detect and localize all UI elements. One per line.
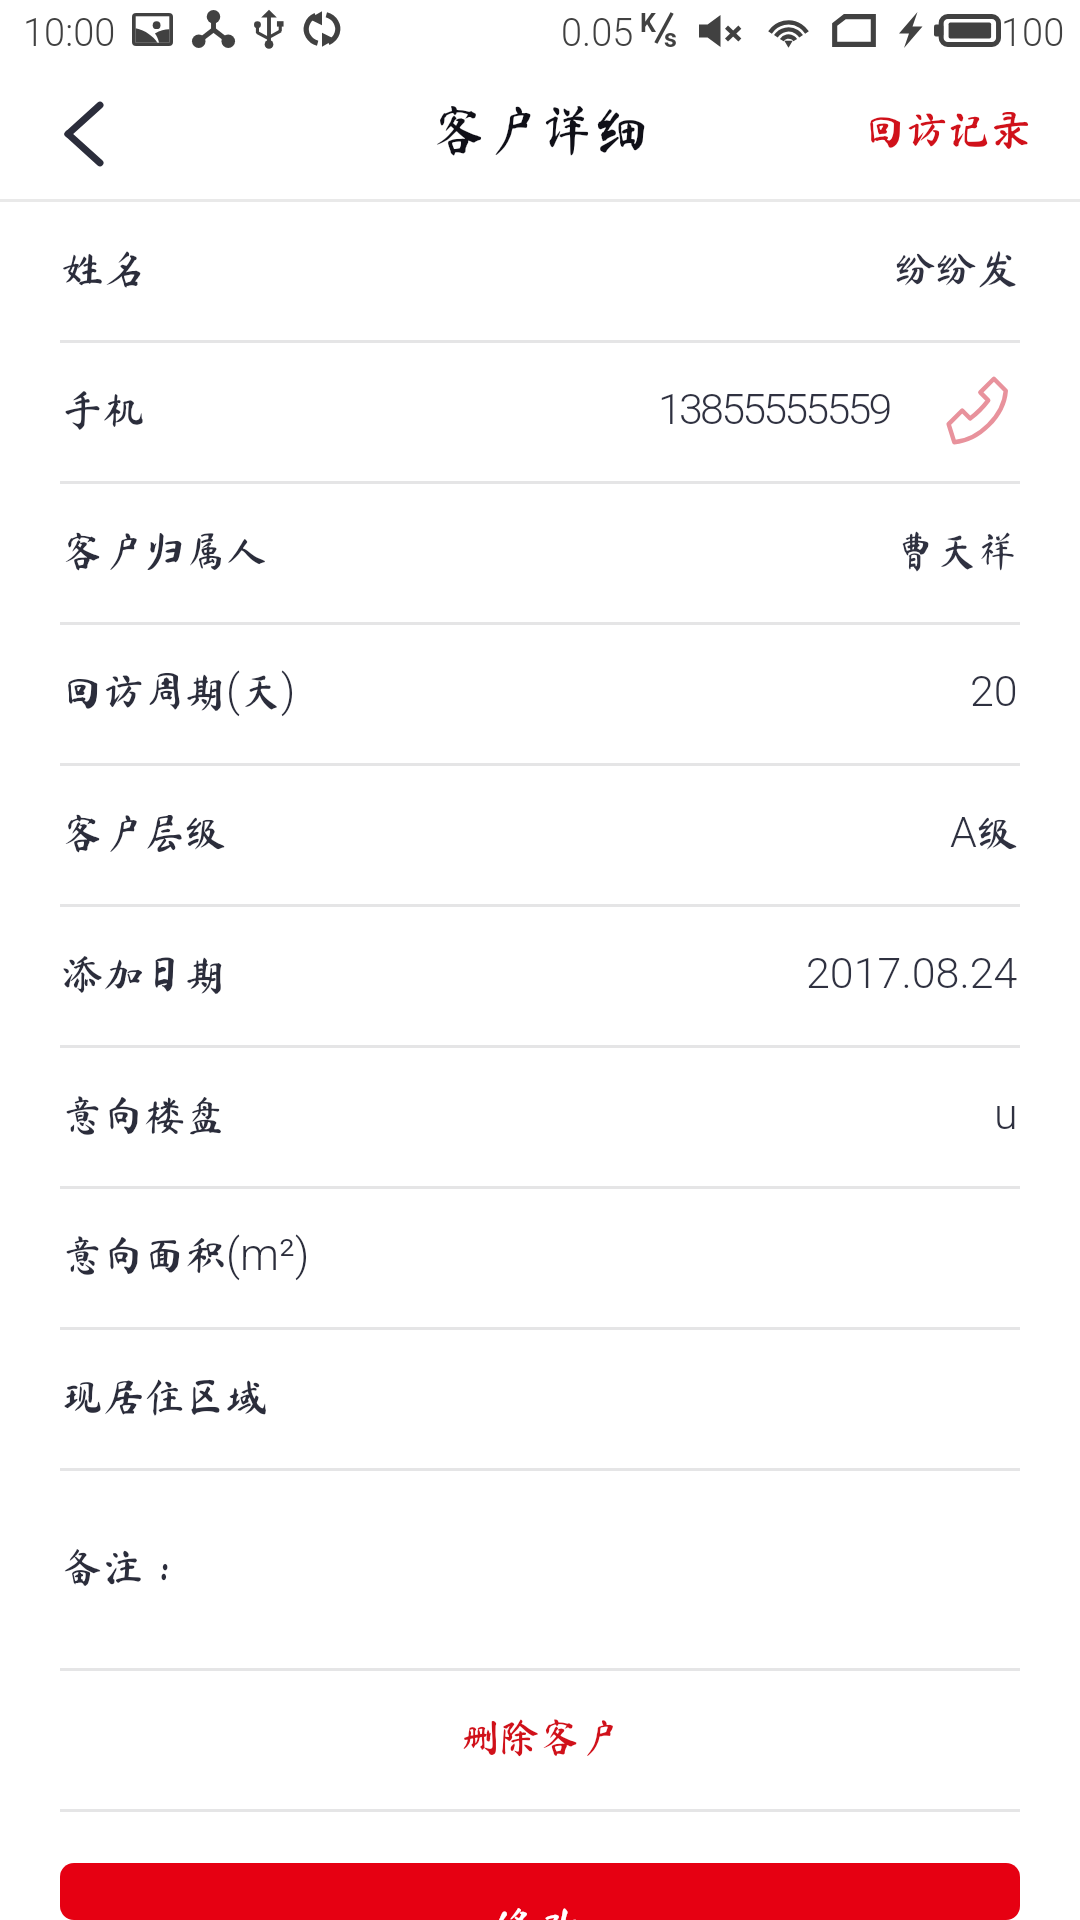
staticText: 客户详细 bbox=[432, 102, 648, 156]
button[interactable]: 意向面积(m²) bbox=[0, 1189, 1080, 1327]
staticText: K bbox=[640, 9, 656, 38]
button[interactable]: 回访记录 bbox=[834, 69, 1080, 199]
button[interactable]: 客户归属人 bbox=[0, 484, 1080, 622]
staticText: 曹天祥 bbox=[895, 530, 1018, 571]
button[interactable]: 回访周期(天) bbox=[0, 625, 1080, 763]
staticText: 100 bbox=[1001, 11, 1065, 56]
button[interactable]: 修改 bbox=[60, 1863, 1020, 1920]
button[interactable]: 删除客户 bbox=[0, 1671, 1080, 1809]
staticText: 客户归属人 bbox=[62, 530, 267, 571]
staticText: 客户层级 bbox=[62, 812, 226, 853]
button[interactable]: 客户层级 bbox=[0, 766, 1080, 904]
staticText: 纷纷发 bbox=[895, 248, 1018, 289]
staticText: A bbox=[950, 807, 977, 857]
staticText: 现居住区域 bbox=[62, 1376, 267, 1417]
button[interactable]: 姓名 bbox=[0, 202, 1080, 340]
staticText: 意向楼盘 bbox=[62, 1094, 226, 1135]
staticText: 0.05 bbox=[561, 11, 634, 56]
button[interactable]: 意向楼盘 bbox=[0, 1048, 1080, 1186]
staticText: 姓名 bbox=[62, 248, 144, 289]
button[interactable]: 备注： bbox=[0, 1471, 1080, 1668]
staticText: 备注： bbox=[62, 1546, 185, 1587]
staticText: 13855555559 bbox=[658, 384, 890, 434]
staticText: 回访周期(天) bbox=[62, 665, 296, 717]
staticText: s bbox=[664, 24, 677, 53]
staticText: 添加日期 bbox=[62, 953, 226, 994]
staticText: 10:00 bbox=[23, 11, 116, 56]
staticText: 级 bbox=[977, 812, 1018, 853]
button[interactable]: 现居住区域 bbox=[0, 1330, 1080, 1468]
button[interactable]: 手机 bbox=[0, 343, 1080, 481]
staticText: u bbox=[994, 1089, 1018, 1139]
button[interactable]: 添加日期 bbox=[0, 907, 1080, 1045]
staticText: 修改 bbox=[490, 1903, 590, 1920]
button[interactable]: Back bbox=[0, 69, 160, 199]
staticText: 手机 bbox=[62, 389, 144, 430]
staticText: 2017.08.24 bbox=[806, 948, 1018, 998]
staticText: 删除客户 bbox=[460, 1717, 620, 1757]
staticText: 意向面积(m²) bbox=[62, 1229, 310, 1281]
staticText: 回访记录 bbox=[864, 108, 1033, 150]
button[interactable]: Call bbox=[922, 352, 1028, 472]
staticText: 20 bbox=[970, 666, 1018, 716]
